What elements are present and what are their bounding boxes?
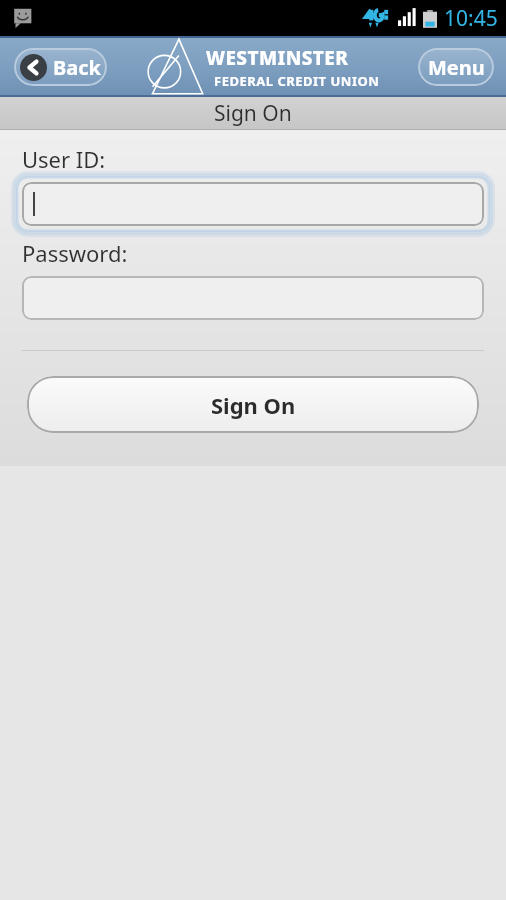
staticText: Sign On [214, 99, 292, 128]
button[interactable]: Menu [418, 48, 494, 86]
staticText: 10:45 [444, 4, 498, 33]
staticText: Menu [428, 54, 485, 81]
staticText: Back [53, 54, 101, 81]
staticText: User ID: [22, 144, 106, 174]
button[interactable] [22, 182, 484, 226]
button[interactable]: Sign On [27, 376, 479, 433]
staticText: Sign On [211, 390, 296, 420]
staticText: WESTMINSTER [206, 45, 349, 71]
staticText: Password: [22, 238, 128, 268]
button[interactable]: Back [14, 48, 107, 86]
staticText: FEDERAL CREDIT UNION [214, 72, 380, 90]
button[interactable] [22, 276, 484, 320]
